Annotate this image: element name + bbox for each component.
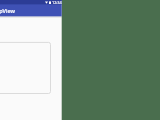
other: Battery bbox=[49, 1, 51, 4]
other: Wi-Fi signal bbox=[45, 1, 48, 4]
button[interactable]: Map card bbox=[0, 42, 51, 94]
staticText: 12:34 bbox=[52, 0, 62, 4]
button[interactable]: MapView bbox=[0, 4, 62, 16]
staticText: MapView bbox=[0, 7, 15, 14]
